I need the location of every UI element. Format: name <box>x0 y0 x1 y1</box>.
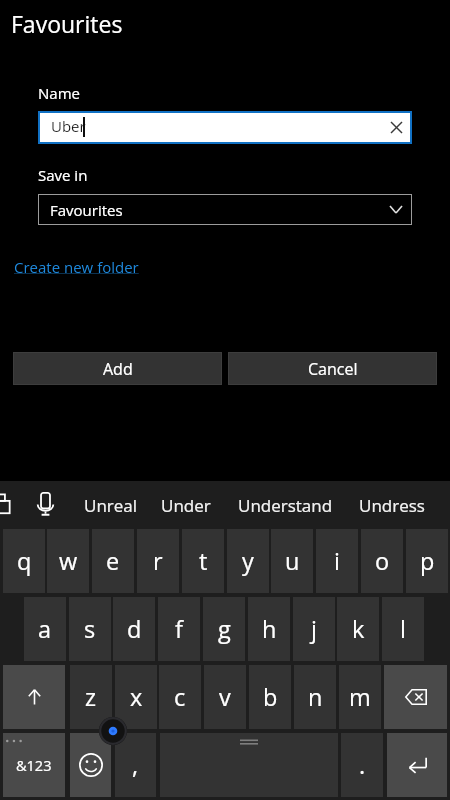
staticText: Uber <box>51 116 86 136</box>
button[interactable]: w <box>47 529 89 593</box>
staticText: Create new folder <box>14 257 139 277</box>
button[interactable]: Under <box>161 481 211 529</box>
staticText: q <box>17 545 32 577</box>
staticText: g <box>218 613 231 645</box>
staticText: h <box>262 613 277 645</box>
staticText: t <box>199 545 208 577</box>
button[interactable]: k <box>337 597 379 661</box>
staticText: x <box>130 681 143 713</box>
button[interactable]: l <box>382 597 424 661</box>
button[interactable]: Space <box>160 733 338 797</box>
staticText: s <box>84 613 96 645</box>
staticText: p <box>420 545 435 577</box>
button[interactable]: Create new folder <box>14 257 139 277</box>
button[interactable]: Favourites <box>38 194 412 225</box>
button[interactable]: j <box>293 597 335 661</box>
staticText: u <box>285 545 300 577</box>
staticText: Unreal <box>84 494 138 517</box>
staticText: n <box>308 681 323 713</box>
staticText: a <box>38 613 52 645</box>
staticText: j <box>311 613 317 645</box>
staticText: Cancel <box>308 358 358 380</box>
button[interactable]: a <box>24 597 66 661</box>
button[interactable]: , <box>115 733 156 797</box>
button[interactable]: q <box>3 529 45 593</box>
button[interactable]: f <box>158 597 200 661</box>
button[interactable]: r <box>137 529 179 593</box>
staticText: Favourites <box>50 200 123 220</box>
button[interactable]: c <box>159 665 201 729</box>
button[interactable]: d <box>113 597 155 661</box>
button[interactable]: Understand <box>238 481 333 529</box>
button[interactable]: Unreal <box>84 481 138 529</box>
staticText: e <box>106 545 120 577</box>
button[interactable]: Uber <box>40 113 410 142</box>
staticText: Save in <box>38 165 88 185</box>
staticText: , <box>132 749 139 781</box>
button[interactable]: Voice input <box>34 492 57 518</box>
button[interactable]: &123 <box>3 733 65 797</box>
staticText: Favourites <box>11 8 123 39</box>
button[interactable]: Undress <box>359 481 425 529</box>
button[interactable]: n <box>294 665 336 729</box>
button[interactable]: i <box>316 529 358 593</box>
button[interactable]: Backspace <box>384 665 447 729</box>
staticText: d <box>127 613 142 645</box>
button[interactable]: b <box>249 665 291 729</box>
staticText: v <box>219 681 231 713</box>
button[interactable]: Enter <box>387 733 447 797</box>
staticText: z <box>85 681 97 713</box>
staticText: r <box>153 545 163 577</box>
staticText: o <box>375 545 390 577</box>
staticText: Understand <box>238 494 333 517</box>
button[interactable]: . <box>341 733 383 797</box>
staticText: Name <box>38 83 80 103</box>
button[interactable]: z <box>70 665 112 729</box>
staticText: l <box>400 613 406 645</box>
button[interactable]: u <box>271 529 313 593</box>
button[interactable]: p <box>406 529 448 593</box>
staticText: b <box>263 681 278 713</box>
staticText: Add <box>103 358 133 380</box>
button[interactable]: Shift <box>3 665 65 729</box>
button[interactable]: Add <box>13 352 222 385</box>
staticText: Under <box>161 494 211 517</box>
button[interactable]: m <box>339 665 381 729</box>
button[interactable]: h <box>248 597 290 661</box>
button[interactable]: v <box>204 665 246 729</box>
button[interactable]: g <box>203 597 245 661</box>
staticText: f <box>175 613 183 645</box>
button[interactable]: y <box>227 529 269 593</box>
button[interactable]: o <box>361 529 403 593</box>
button[interactable]: Clipboard <box>0 492 15 516</box>
button[interactable]: e <box>92 529 134 593</box>
button[interactable]: Clear text <box>383 113 410 142</box>
button[interactable]: Cancel <box>228 352 437 385</box>
staticText: y <box>242 545 254 577</box>
button[interactable]: s <box>69 597 111 661</box>
staticText: m <box>349 681 371 713</box>
staticText: c <box>174 681 186 713</box>
staticText: k <box>352 613 365 645</box>
staticText: w <box>59 545 78 577</box>
staticText: Undress <box>359 494 425 517</box>
button[interactable]: t <box>182 529 224 593</box>
button[interactable]: Emoji <box>70 733 111 797</box>
button[interactable]: x <box>115 665 157 729</box>
staticText: i <box>334 545 340 577</box>
staticText: . <box>359 749 366 781</box>
staticText: &123 <box>16 756 52 776</box>
